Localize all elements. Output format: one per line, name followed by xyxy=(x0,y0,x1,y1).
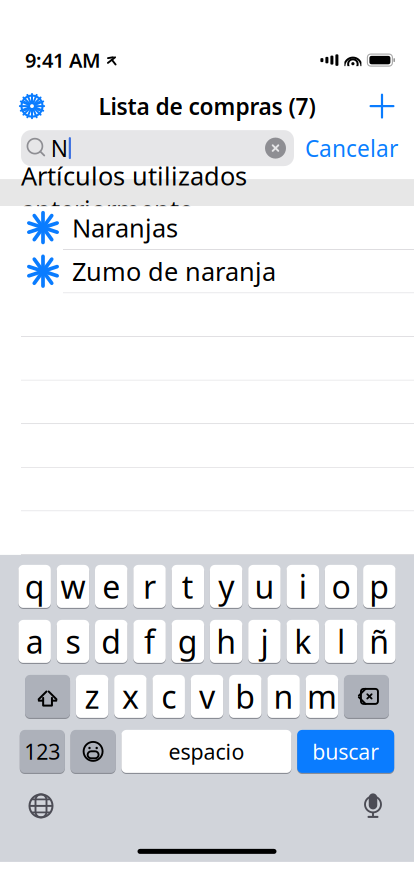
staticText: Lista de compras (7) xyxy=(98,91,315,121)
staticText: v xyxy=(199,675,215,718)
button[interactable]: v xyxy=(191,674,223,719)
button[interactable]: o xyxy=(325,564,357,609)
button[interactable]: n xyxy=(267,674,300,719)
staticText: a xyxy=(26,620,44,663)
button[interactable]: g xyxy=(172,619,204,664)
staticText: q xyxy=(25,565,45,608)
button[interactable]: z xyxy=(76,674,108,719)
staticText: o xyxy=(332,565,351,608)
button[interactable]: buscar xyxy=(297,729,394,774)
button[interactable]: q xyxy=(18,564,51,609)
button[interactable]: Ajustes xyxy=(10,84,54,128)
staticText: espacio xyxy=(168,737,244,765)
button[interactable]: p xyxy=(363,564,396,609)
button[interactable]: 123 xyxy=(20,729,65,774)
staticText: Cancelar xyxy=(305,133,398,163)
staticText: z xyxy=(85,675,100,718)
button[interactable]: ñ xyxy=(363,619,396,664)
staticText: n xyxy=(274,675,294,718)
staticText: 9:41 AM xyxy=(25,47,101,73)
button[interactable]: x xyxy=(114,674,147,719)
button[interactable]: Cambiar idioma xyxy=(16,783,66,829)
staticText: m xyxy=(307,675,337,718)
button[interactable]: k xyxy=(286,619,319,664)
staticText: c xyxy=(161,675,176,718)
staticText: h xyxy=(216,620,236,663)
button[interactable]: Borrar xyxy=(344,674,389,719)
button[interactable]: Cancelar xyxy=(305,133,398,163)
button[interactable]: Naranjas xyxy=(0,206,414,250)
button[interactable]: Añadir artículo xyxy=(360,84,404,128)
button[interactable]: m xyxy=(306,674,338,719)
button[interactable]: Dictado xyxy=(348,783,398,829)
button[interactable]: espacio xyxy=(121,729,291,774)
staticText: u xyxy=(254,565,274,608)
staticText: f xyxy=(144,620,155,663)
button[interactable]: f xyxy=(133,619,166,664)
button[interactable]: Mayúsculas xyxy=(25,674,70,719)
button[interactable]: b xyxy=(229,674,262,719)
staticText: j xyxy=(260,620,268,663)
staticText: b xyxy=(235,675,255,718)
staticText: k xyxy=(294,620,311,663)
staticText: s xyxy=(65,620,80,663)
staticText: l xyxy=(337,620,345,663)
button[interactable]: N xyxy=(21,130,294,166)
button[interactable]: c xyxy=(152,674,185,719)
button[interactable]: u xyxy=(248,564,281,609)
button[interactable]: r xyxy=(133,564,166,609)
button[interactable]: j xyxy=(248,619,281,664)
staticText: N xyxy=(51,133,68,163)
staticText: e xyxy=(102,565,120,608)
button[interactable]: Emoji xyxy=(71,729,116,774)
staticText: p xyxy=(369,565,389,608)
button[interactable]: y xyxy=(210,564,242,609)
button[interactable]: e xyxy=(95,564,127,609)
staticText: t xyxy=(182,565,194,608)
button[interactable]: l xyxy=(325,619,357,664)
button[interactable]: a xyxy=(18,619,51,664)
staticText: w xyxy=(60,565,85,608)
staticText: d xyxy=(101,620,121,663)
staticText: i xyxy=(299,565,307,608)
button[interactable]: w xyxy=(57,564,89,609)
button[interactable]: d xyxy=(95,619,127,664)
button[interactable]: Zumo de naranja xyxy=(0,250,414,293)
staticText: y xyxy=(218,565,234,608)
staticText: g xyxy=(178,620,198,663)
staticText: buscar xyxy=(312,737,379,765)
staticText: 123 xyxy=(24,737,60,765)
button[interactable]: s xyxy=(57,619,89,664)
button[interactable]: i xyxy=(286,564,319,609)
staticText: Artículos utilizados anteriormente xyxy=(21,159,247,226)
staticText: x xyxy=(122,675,139,718)
button[interactable]: t xyxy=(172,564,204,609)
staticText: ñ xyxy=(369,620,389,663)
staticText: Zumo de naranja xyxy=(72,254,276,288)
staticText: r xyxy=(143,565,156,608)
staticText: Naranjas xyxy=(72,211,178,244)
button[interactable]: h xyxy=(210,619,242,664)
